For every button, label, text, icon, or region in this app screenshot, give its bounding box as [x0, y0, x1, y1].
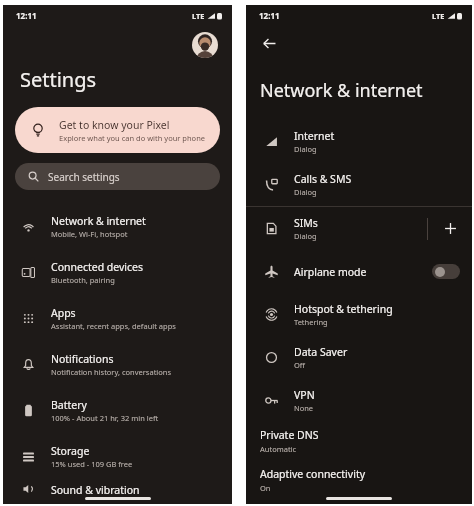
staticText: Sound & vibration: [51, 483, 140, 497]
staticText: Dialog: [294, 187, 317, 197]
button[interactable]: Data Saver: [246, 336, 472, 379]
staticText: None: [294, 403, 314, 413]
staticText: On: [260, 483, 271, 493]
staticText: Connected devices: [51, 260, 144, 274]
staticText: Private DNS: [260, 428, 319, 442]
staticText: 12:11: [259, 10, 280, 21]
button[interactable]: Hotspot & tethering: [246, 293, 472, 336]
button[interactable]: Notifications: [3, 341, 232, 387]
staticText: Bluetooth, pairing: [51, 275, 115, 285]
staticText: Internet: [294, 129, 335, 143]
staticText: Tethering: [294, 317, 328, 327]
button[interactable]: SIMs: [246, 207, 472, 250]
staticText: Dialog: [294, 231, 317, 241]
staticText: Data Saver: [294, 345, 348, 359]
staticText: SIMs: [294, 216, 318, 230]
staticText: Assistant, recent apps, default apps: [51, 321, 176, 331]
staticText: Battery: [51, 398, 87, 412]
staticText: Get to know your Pixel: [59, 118, 170, 132]
staticText: Network & internet: [260, 78, 423, 103]
button[interactable]: Storage: [3, 433, 232, 479]
button[interactable]: Airplane mode: [246, 250, 472, 293]
staticText: Adaptive connectivity: [260, 467, 366, 481]
staticText: LTE: [192, 11, 205, 21]
button[interactable]: Get to know your Pixel: [15, 107, 220, 153]
staticText: Network & internet: [51, 214, 146, 228]
button[interactable]: Network & internet: [3, 203, 232, 249]
staticText: LTE: [432, 11, 445, 21]
staticText: Dialog: [294, 144, 317, 154]
staticText: 15% used - 109 GB free: [51, 459, 133, 469]
staticText: Notification history, conversations: [51, 367, 172, 377]
staticText: Storage: [51, 444, 90, 458]
button[interactable]: VPN: [246, 379, 472, 422]
staticText: Automatic: [260, 444, 297, 454]
staticText: Off: [294, 360, 306, 370]
button[interactable]: Search settings: [15, 163, 220, 190]
staticText: 100% - About 21 hr, 32 min left: [51, 413, 159, 423]
button[interactable]: Calls & SMS: [246, 163, 472, 206]
staticText: Apps: [51, 306, 76, 320]
staticText: Mobile, Wi-Fi, hotspot: [51, 229, 128, 239]
staticText: Calls & SMS: [294, 172, 352, 186]
button[interactable]: Apps: [3, 295, 232, 341]
staticText: VPN: [294, 388, 315, 402]
button[interactable]: Account avatar: [192, 32, 218, 58]
button[interactable]: Battery: [3, 387, 232, 433]
button[interactable]: Connected devices: [3, 249, 232, 295]
staticText: Search settings: [48, 170, 120, 184]
button[interactable]: Private DNS: [260, 428, 472, 454]
staticText: Hotspot & tethering: [294, 302, 393, 316]
staticText: Explore what you can do with your phone: [59, 133, 206, 143]
button[interactable]: Internet: [246, 120, 472, 163]
button[interactable]: Add SIM: [428, 207, 472, 250]
button[interactable]: Back: [256, 30, 282, 56]
staticText: 12:11: [16, 10, 37, 21]
staticText: Notifications: [51, 352, 114, 366]
staticText: Airplane mode: [294, 265, 432, 279]
button[interactable]: Airplane mode toggle: [432, 264, 460, 279]
staticText: Settings: [20, 66, 97, 93]
